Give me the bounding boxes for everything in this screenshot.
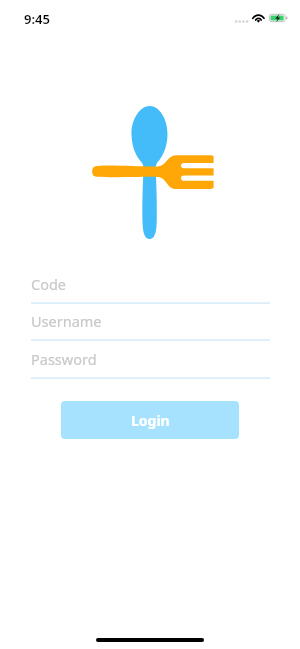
button[interactable]: Username bbox=[31, 304, 270, 340]
button[interactable]: Login bbox=[61, 401, 239, 439]
staticText: Code bbox=[31, 274, 67, 294]
staticText: 9:45 bbox=[24, 10, 50, 28]
staticText: Login bbox=[131, 411, 170, 430]
button[interactable]: Password bbox=[31, 342, 270, 378]
button[interactable]: Code bbox=[31, 267, 270, 303]
staticText: Password bbox=[31, 349, 97, 369]
staticText: Username bbox=[31, 311, 102, 331]
